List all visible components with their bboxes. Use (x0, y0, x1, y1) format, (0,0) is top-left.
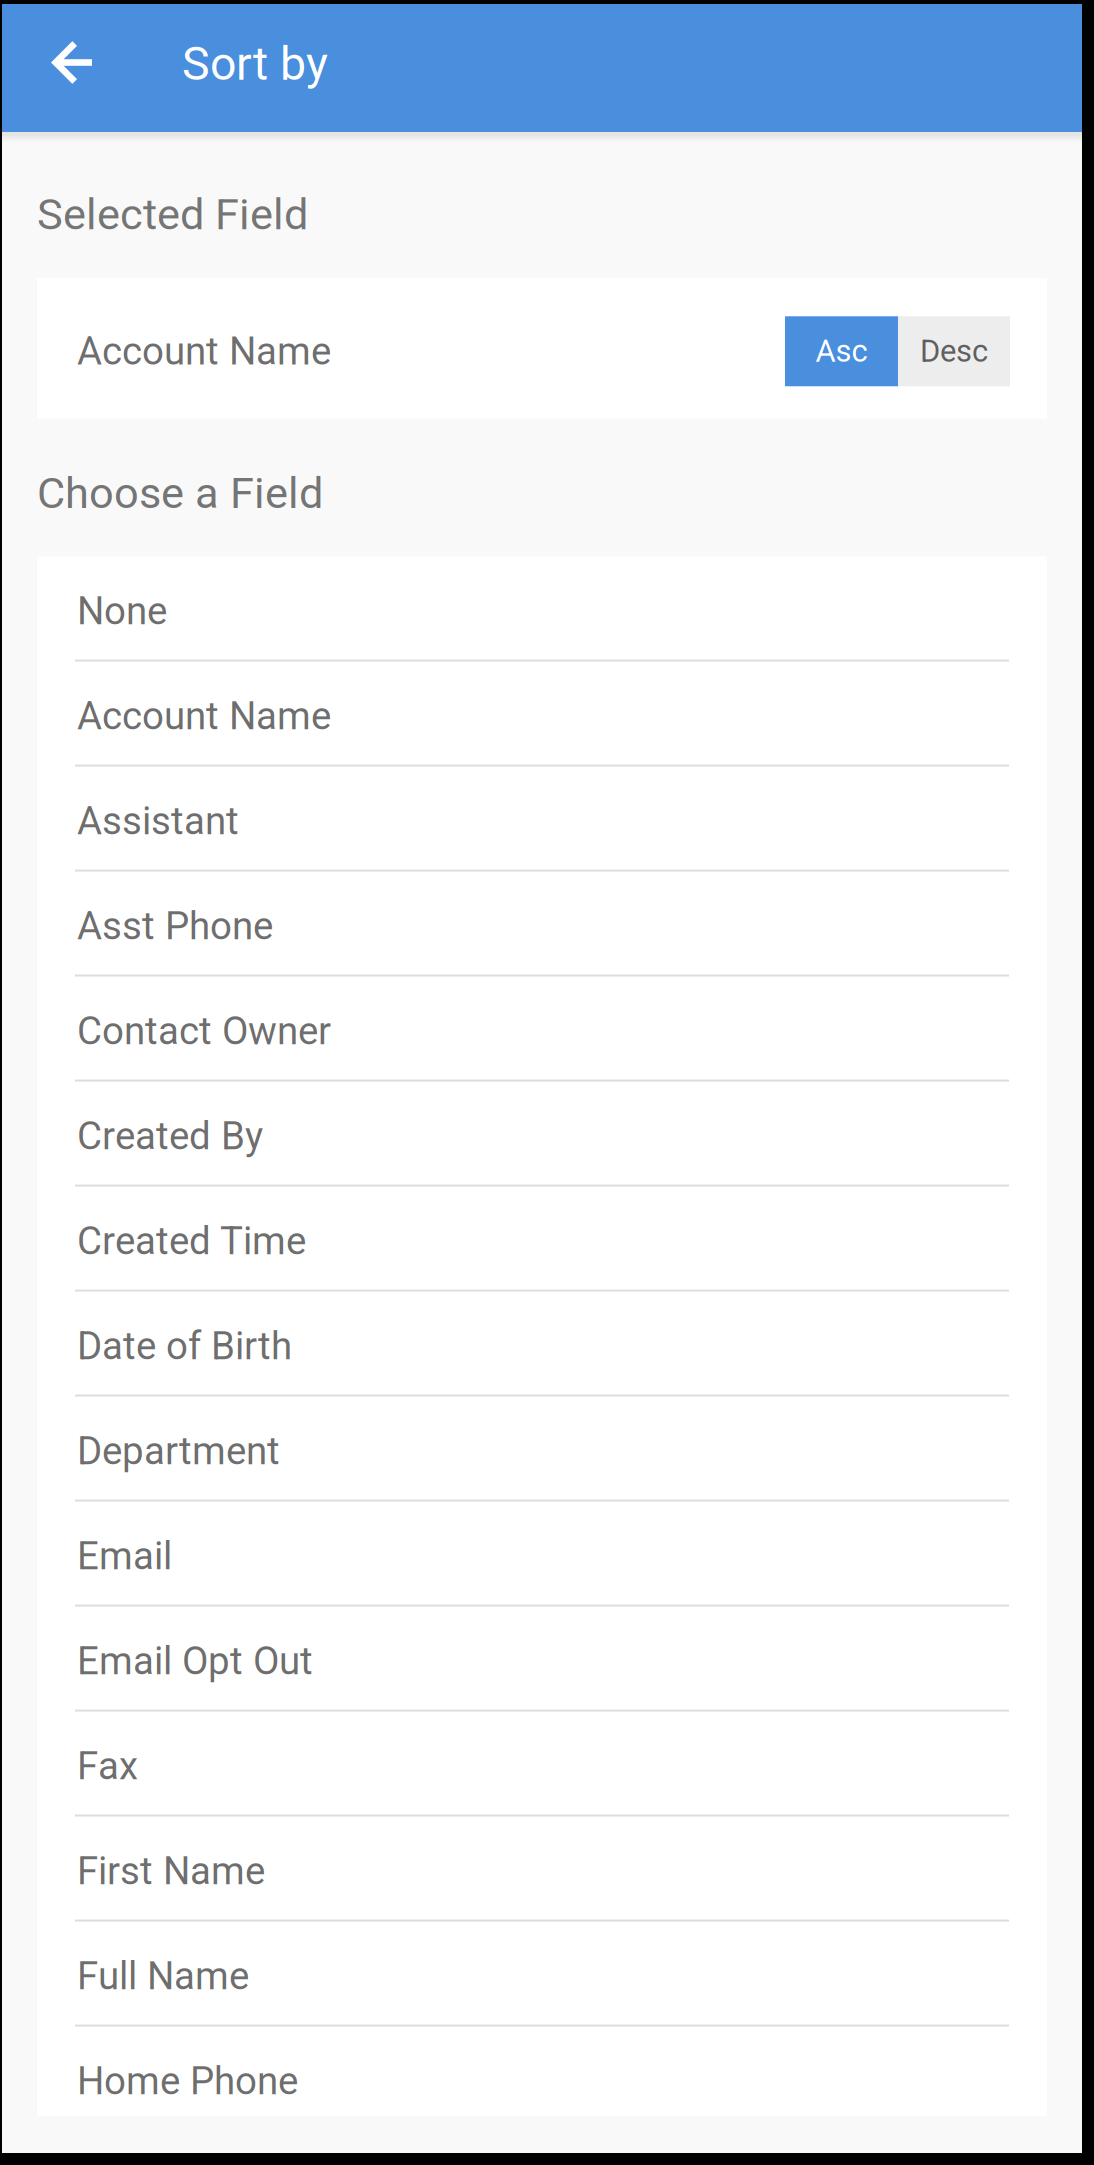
staticText: Selected Field (37, 189, 308, 240)
staticText: Full Name (77, 1954, 249, 1999)
staticText: Desc (920, 333, 988, 369)
staticText: Sort by (182, 37, 328, 91)
staticText: Asst Phone (77, 904, 273, 949)
staticText: None (77, 589, 167, 634)
staticText: Department (77, 1429, 280, 1474)
staticText: Email Opt Out (77, 1639, 313, 1684)
button[interactable]: Email Opt Out (37, 1607, 1047, 1712)
button[interactable]: Full Name (37, 1922, 1047, 2027)
staticText: Choose a Field (37, 468, 323, 519)
staticText: Account Name (77, 329, 331, 374)
staticText: Home Phone (77, 2059, 298, 2104)
staticText: First Name (77, 1849, 265, 1894)
staticText: Email (77, 1534, 172, 1579)
staticText: Contact Owner (77, 1009, 331, 1054)
button[interactable]: Asst Phone (37, 872, 1047, 977)
button[interactable]: First Name (37, 1817, 1047, 1922)
staticText: Created Time (77, 1219, 306, 1264)
staticText: Date of Birth (77, 1324, 292, 1369)
button[interactable]: Home Phone (37, 2027, 1047, 2117)
staticText: Assistant (77, 799, 239, 844)
button[interactable]: Created By (37, 1082, 1047, 1187)
button[interactable]: Contact Owner (37, 977, 1047, 1082)
staticText: Account Name (77, 694, 331, 739)
button[interactable]: Account Name (37, 662, 1047, 767)
button[interactable]: Back (2, 4, 182, 124)
button[interactable]: Fax (37, 1712, 1047, 1817)
button[interactable]: Created Time (37, 1187, 1047, 1292)
staticText: Asc (815, 333, 867, 369)
button[interactable]: Department (37, 1397, 1047, 1502)
button[interactable]: None (37, 557, 1047, 662)
button[interactable]: Date of Birth (37, 1292, 1047, 1397)
button[interactable]: Assistant (37, 767, 1047, 872)
button[interactable]: Email (37, 1502, 1047, 1607)
button[interactable]: Asc (785, 316, 898, 386)
staticText: Created By (77, 1114, 263, 1159)
button[interactable]: Desc (898, 316, 1010, 386)
staticText: Fax (77, 1744, 138, 1789)
